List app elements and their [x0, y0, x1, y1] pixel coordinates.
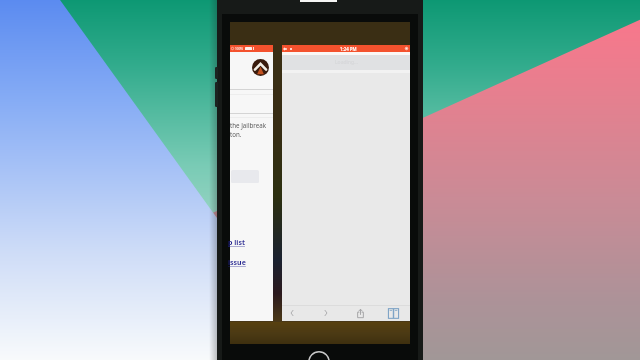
- button[interactable]: Back: [284, 305, 300, 321]
- button[interactable]: Bookmarks: [385, 305, 401, 321]
- button[interactable]: Share: [352, 305, 368, 321]
- staticText: 100%: [235, 47, 244, 51]
- staticText: Loading…: [335, 59, 358, 66]
- staticText: the Jailbreak ton.: [230, 121, 267, 139]
- button[interactable]: Home: [308, 351, 330, 360]
- staticText: 1:24 PM: [340, 46, 357, 52]
- button[interactable]: Forward: [318, 305, 334, 321]
- button[interactable]: p list: [228, 238, 245, 248]
- button[interactable]: issue: [228, 258, 246, 268]
